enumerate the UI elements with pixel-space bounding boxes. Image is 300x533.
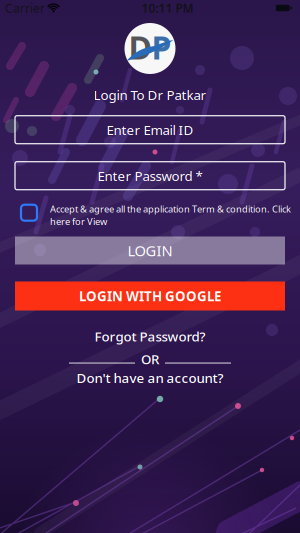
- button[interactable]: Accept & agree all the application Term …: [50, 203, 291, 227]
- staticText: Login To Dr Patkar: [93, 86, 206, 104]
- button[interactable]: Don't have an account?: [76, 369, 223, 387]
- staticText: Don't have an account?: [76, 369, 223, 387]
- button[interactable]: LOGIN WITH GOOGLE: [15, 281, 285, 310]
- staticText: P: [151, 26, 171, 68]
- staticText: Enter Email ID: [106, 121, 193, 139]
- staticText: Enter Password *: [97, 167, 202, 185]
- staticText: Accept & agree all the application Term …: [50, 203, 291, 227]
- button[interactable]: Enter Email ID: [15, 116, 285, 144]
- staticText: D: [128, 26, 151, 68]
- staticText: OR: [141, 350, 159, 368]
- staticText: LOGIN: [127, 241, 172, 260]
- button[interactable]: Forgot Password?: [94, 327, 205, 345]
- staticText: 10:11 PM: [141, 0, 193, 16]
- button[interactable]: Accept terms and conditions: [21, 205, 37, 221]
- button[interactable]: Enter Password *: [15, 162, 285, 190]
- staticText: LOGIN WITH GOOGLE: [79, 287, 221, 305]
- staticText: Carrier: [5, 0, 45, 16]
- staticText: Forgot Password?: [94, 327, 205, 345]
- button[interactable]: LOGIN: [15, 236, 285, 264]
